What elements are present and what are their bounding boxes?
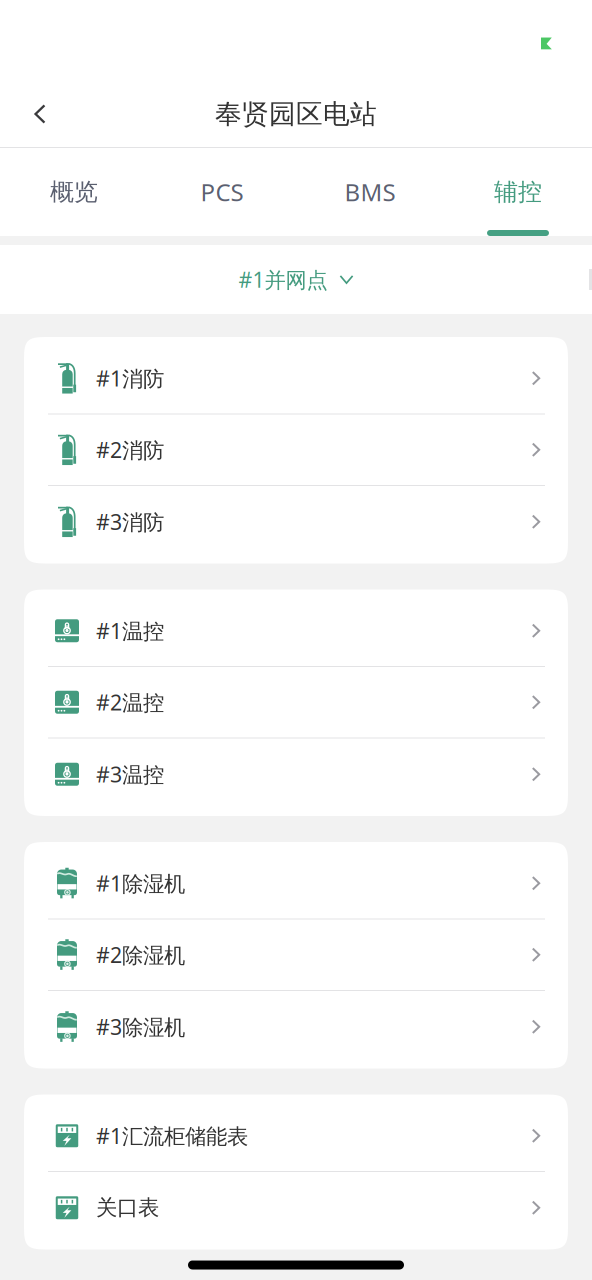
staticText: #2除湿机: [96, 941, 185, 969]
button[interactable]: #2温控: [24, 667, 568, 738]
staticText: #2消防: [96, 436, 164, 464]
button[interactable]: Back: [18, 92, 62, 136]
button[interactable]: 关口表: [24, 1172, 568, 1243]
staticText: #1并网点: [238, 265, 327, 294]
staticText: 关口表: [96, 1195, 159, 1221]
button[interactable]: #3温控: [24, 738, 568, 810]
staticText: #1消防: [96, 364, 164, 392]
staticText: #2温控: [96, 688, 164, 716]
staticText: #1温控: [96, 617, 164, 645]
button[interactable]: #2消防: [24, 414, 568, 486]
button[interactable]: #1温控: [24, 595, 568, 667]
button[interactable]: #3除湿机: [24, 991, 568, 1062]
button[interactable]: #1消防: [24, 343, 568, 414]
staticText: #1除湿机: [96, 869, 185, 897]
button[interactable]: #1除湿机: [24, 848, 568, 919]
button[interactable]: #2除湿机: [24, 919, 568, 991]
staticText: 辅控: [494, 177, 542, 207]
button[interactable]: #1汇流柜储能表: [24, 1100, 568, 1172]
staticText: 奉贤园区电站: [215, 98, 377, 130]
staticText: #3消防: [96, 508, 164, 536]
button[interactable]: BMS: [296, 148, 444, 236]
staticText: #3温控: [96, 760, 164, 788]
button[interactable]: 辅控: [444, 148, 592, 236]
button[interactable]: #3消防: [24, 486, 568, 557]
staticText: #1汇流柜储能表: [96, 1122, 248, 1150]
staticText: BMS: [344, 176, 395, 208]
staticText: #3除湿机: [96, 1013, 185, 1041]
button[interactable]: 概览: [0, 148, 148, 236]
staticText: PCS: [200, 176, 243, 208]
staticText: 概览: [50, 177, 98, 207]
button[interactable]: #1并网点: [0, 245, 592, 314]
button[interactable]: PCS: [148, 148, 296, 236]
